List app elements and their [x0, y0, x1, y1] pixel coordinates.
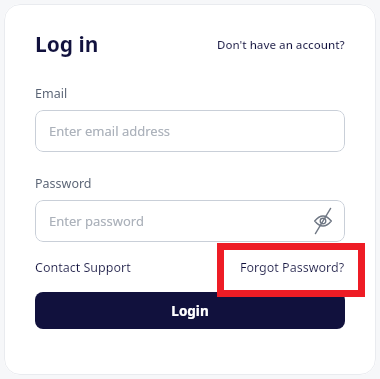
staticText: Email	[35, 85, 68, 102]
staticText: Password	[35, 175, 92, 192]
staticText: Enter email address	[49, 122, 171, 140]
staticText: Don't have an account?	[217, 37, 345, 53]
staticText: Forgot Password?	[240, 259, 345, 276]
button[interactable]: Don't have an account?	[217, 37, 345, 53]
staticText: Login	[171, 302, 209, 320]
button[interactable]: Login	[35, 292, 345, 329]
button[interactable]: Show password	[311, 209, 335, 233]
staticText: Log in	[35, 30, 99, 59]
button[interactable]: Enter email address	[35, 110, 345, 152]
staticText: Enter password	[49, 212, 144, 230]
button[interactable]: Forgot Password?	[240, 259, 345, 276]
staticText: Contact Support	[35, 259, 131, 276]
button[interactable]: Contact Support	[35, 259, 131, 276]
button[interactable]: Enter password	[35, 200, 345, 242]
